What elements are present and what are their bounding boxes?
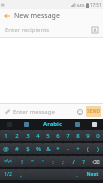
button[interactable]: " [27,156,38,167]
staticText: 2 [15,132,19,140]
button[interactable]: 3 [22,130,33,141]
button[interactable]: ; [58,156,68,167]
button[interactable]: , [16,169,26,180]
staticText: & [46,145,51,153]
button[interactable]: % [33,143,43,154]
button[interactable]: : [48,156,58,167]
button[interactable]: Emoji [74,106,85,117]
button[interactable]: Add contact [89,24,101,36]
button[interactable]: ? [78,156,88,167]
staticText: @ [3,145,9,153]
staticText: Next [86,171,99,178]
button[interactable]: . [72,169,82,180]
staticText: 4 [36,132,40,140]
button[interactable]: Voice input [69,119,86,129]
button[interactable]: * [53,143,63,154]
button[interactable]: Enter recipients [0,23,103,37]
staticText: 6 [56,132,60,140]
staticText: Arabic [43,120,62,128]
staticText: * [56,145,60,153]
button[interactable]: Enter message [13,108,55,116]
staticText: New message [14,11,60,21]
staticText: 0 [96,132,100,140]
button[interactable]: Emoticon [0,119,18,129]
staticText: : [52,158,54,166]
staticText: ; [62,158,64,166]
staticText: 5 [46,132,50,140]
button[interactable]: ) [93,143,103,154]
button[interactable]: 4 [33,130,43,141]
staticText: ) [97,145,99,153]
button[interactable]: Next [82,169,103,180]
button[interactable]: 5 [43,130,53,141]
button[interactable]: ! [16,156,27,167]
button[interactable]: Keyboard layout [86,119,103,129]
button[interactable]: 7 [63,130,73,141]
button[interactable]: 9 [83,130,93,141]
staticText: / [72,158,75,166]
button[interactable]: 1/2 [0,169,16,180]
staticText: 1 [4,132,8,140]
button[interactable]: Arabic [35,119,69,129]
staticText: $ [26,145,30,153]
button[interactable]: & [43,143,53,154]
staticText: # [15,145,19,153]
staticText: 7 [66,132,70,140]
button[interactable]: =\< [0,156,16,167]
button[interactable]: + [73,143,83,154]
staticText: - [67,145,69,153]
button[interactable]: ⌫ [88,156,103,167]
staticText: Enter recipients [5,26,50,34]
staticText: ⌫ [92,159,100,165]
staticText: 17:51 [90,2,102,8]
staticText: ! [21,158,23,166]
staticText: 8 [76,132,80,140]
button[interactable] [26,169,72,180]
button[interactable]: / [68,156,78,167]
button[interactable]: 0 [93,130,103,141]
staticText: SEND [87,108,101,115]
staticText: . [76,171,78,179]
staticText: ' [42,158,44,166]
button[interactable]: SEND [86,106,101,117]
button[interactable]: $ [22,143,33,154]
staticText: % [36,145,41,153]
staticText: " [31,158,34,166]
staticText: ( [87,145,89,153]
staticText: 9 [86,132,90,140]
staticText: 3 [26,132,30,140]
staticText: + [76,145,80,153]
staticText: 64% [77,3,85,8]
button[interactable]: 6 [53,130,63,141]
staticText: , [20,171,22,179]
button[interactable]: 8 [73,130,83,141]
staticText: 1/2 [4,171,12,178]
button[interactable]: ( [83,143,93,154]
button[interactable]: 1 [0,130,11,141]
button[interactable]: Settings [18,119,35,129]
button[interactable]: ' [38,156,48,167]
button[interactable]: @ [0,143,11,154]
button[interactable]: - [63,143,73,154]
staticText: ? [82,158,85,166]
button[interactable]: Back [0,9,14,23]
staticText: =\< [4,158,12,165]
button[interactable]: Attach [2,106,13,117]
button[interactable]: # [11,143,22,154]
button[interactable]: 2 [11,130,22,141]
